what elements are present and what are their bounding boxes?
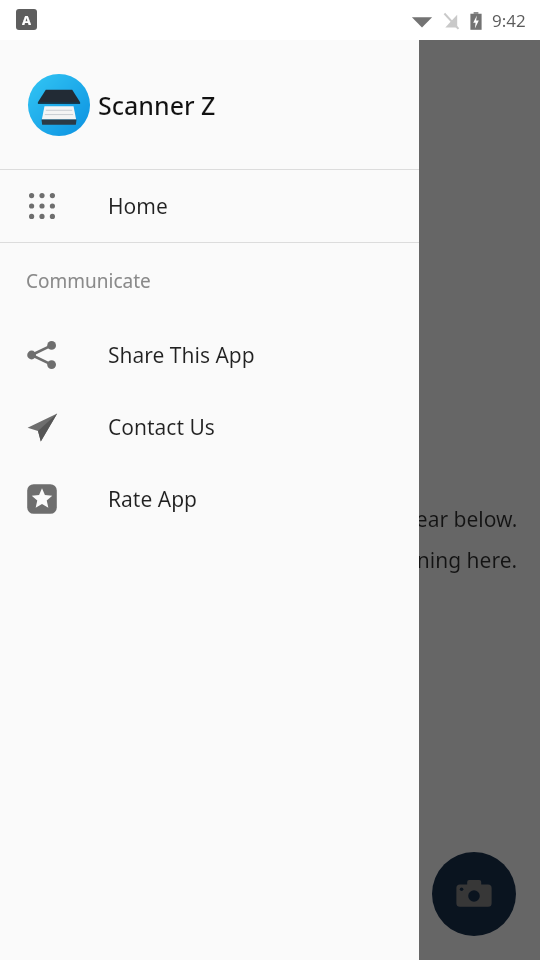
staticText: Communicate <box>26 268 151 294</box>
button[interactable]: Contact Us <box>0 391 419 463</box>
button[interactable]: Home <box>0 170 419 242</box>
staticText: A <box>22 11 31 29</box>
button[interactable]: Scan with camera <box>432 852 516 936</box>
staticText: Rate App <box>108 485 197 514</box>
staticText: 9:42 <box>492 9 526 32</box>
button[interactable]: Share This App <box>0 319 419 391</box>
button[interactable]: Rate App <box>0 463 419 535</box>
button[interactable]: Scanner Z <box>0 40 419 169</box>
staticText: Share This App <box>108 341 255 370</box>
staticText: Tap the camera button to start scanning … <box>66 546 518 575</box>
staticText: Your scanned documents will appear below… <box>85 505 518 534</box>
staticText: Scanner Z <box>98 88 216 122</box>
staticText: Home <box>108 192 168 221</box>
staticText: Contact Us <box>108 413 215 442</box>
